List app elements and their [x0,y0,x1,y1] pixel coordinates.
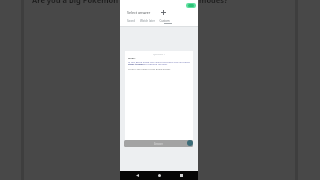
staticText: Mode: [128,56,136,59]
staticText: What is the name of this game mode? [128,67,171,70]
staticText: In this game mode you collect monsters a… [128,60,192,66]
staticText: Custom [159,19,170,23]
staticText: Watch later [140,19,155,23]
button[interactable]: Question 1 [125,51,193,140]
staticText: Are you a big Pokemon fan? Do you know a… [32,0,228,5]
button[interactable]: Custom [157,17,172,25]
button[interactable]: Back [132,171,142,180]
button[interactable]: Watch later [138,17,157,25]
button[interactable]: Send [187,140,193,146]
button[interactable]: Saved [124,17,138,25]
staticText: Saved [127,19,135,23]
button[interactable]: Home [154,171,164,180]
staticText: Select answer [127,10,151,15]
staticText: Question 1 [153,52,166,55]
button[interactable]: Answer [124,140,193,147]
staticText: Answer [154,142,164,146]
button[interactable]: Recents [176,171,186,180]
button[interactable]: Add [159,8,167,16]
